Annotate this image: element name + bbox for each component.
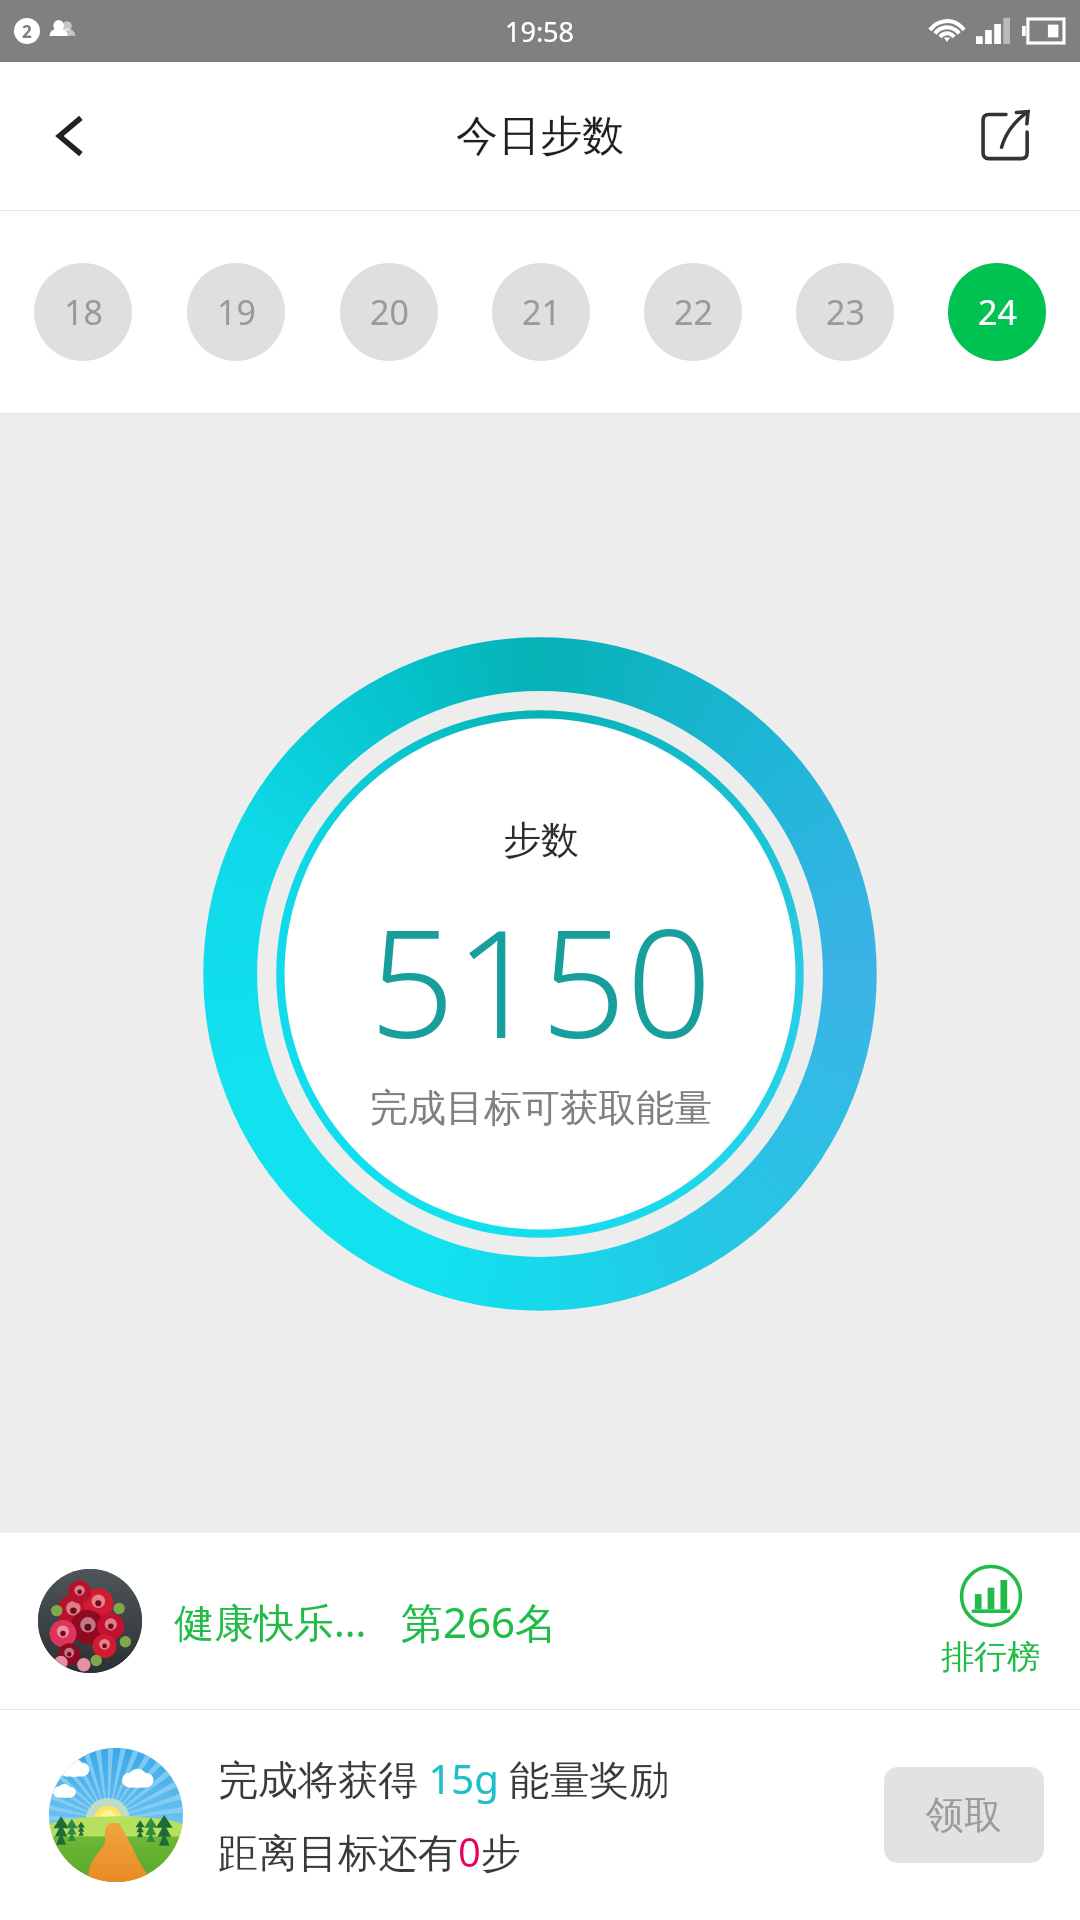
staticText: 24 — [978, 289, 1017, 335]
button[interactable]: 21 — [492, 263, 590, 361]
button[interactable]: 步数 — [195, 629, 885, 1319]
staticText: 距离目标还有0步 — [218, 1824, 521, 1879]
button[interactable]: 23 — [796, 263, 894, 361]
staticText: 完成目标可获取能量 — [370, 1084, 712, 1132]
staticText: 20 — [370, 289, 409, 335]
button[interactable]: Share — [960, 88, 1056, 184]
staticText: 健康快乐... — [174, 1594, 367, 1649]
button[interactable]: 20 — [340, 263, 438, 361]
button[interactable]: Back — [22, 88, 118, 184]
staticText: 22 — [674, 289, 713, 335]
staticText: 领取 — [926, 1791, 1002, 1839]
staticText: 今日步数 — [456, 110, 624, 163]
button[interactable]: 健康快乐... — [0, 1533, 1080, 1709]
button[interactable]: 24 — [948, 263, 1046, 361]
button[interactable]: 22 — [644, 263, 742, 361]
staticText: 23 — [826, 289, 865, 335]
button[interactable]: 领取 — [884, 1767, 1044, 1863]
staticText: 2 — [22, 20, 32, 43]
staticText: 完成将获得 15g 能量奖励 — [218, 1751, 670, 1806]
staticText: 19 — [217, 289, 256, 335]
staticText: 21 — [522, 289, 561, 335]
staticText: 18 — [64, 289, 103, 335]
staticText: 5150 — [369, 878, 712, 1082]
button[interactable]: 19 — [187, 263, 285, 361]
staticText: 排行榜 — [941, 1636, 1040, 1678]
button[interactable]: 排行榜 — [935, 1564, 1046, 1678]
staticText: 19:58 — [505, 13, 575, 50]
staticText: 步数 — [503, 816, 579, 864]
button[interactable]: 18 — [34, 263, 132, 361]
staticText: 第266名 — [401, 1593, 558, 1650]
